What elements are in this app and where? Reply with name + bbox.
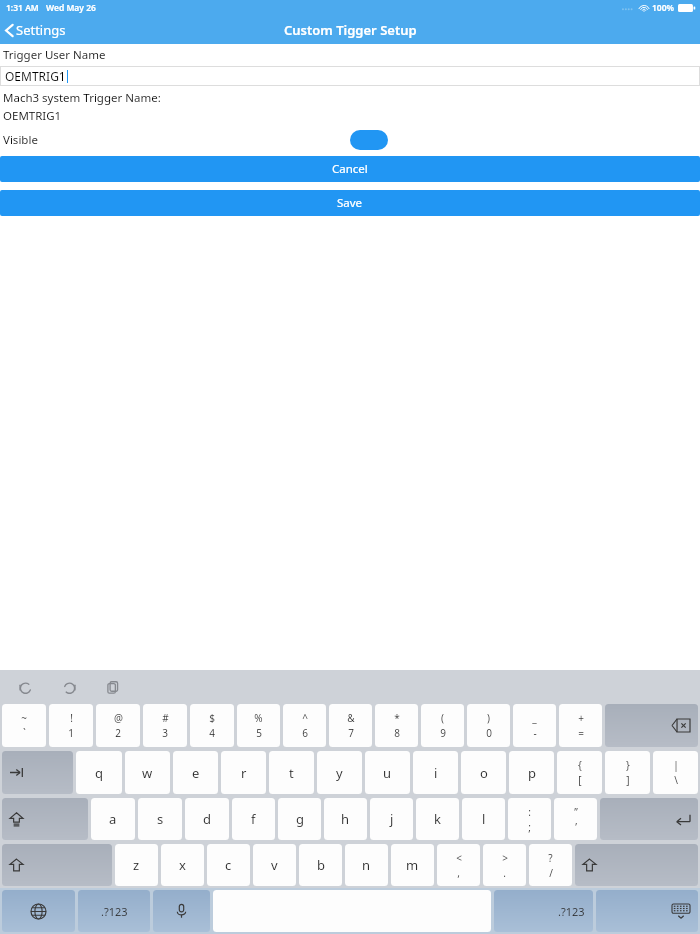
button[interactable]: k bbox=[416, 798, 459, 840]
button[interactable]: Language bbox=[2, 890, 75, 932]
button[interactable]: m bbox=[391, 844, 434, 886]
button[interactable]: z bbox=[115, 844, 158, 886]
staticText: Trigger User Name bbox=[3, 47, 106, 63]
button[interactable]: _ bbox=[513, 704, 556, 747]
staticText: s bbox=[157, 810, 164, 828]
button[interactable]: h bbox=[324, 798, 367, 840]
button[interactable]: g bbox=[278, 798, 321, 840]
button[interactable]: f bbox=[232, 798, 275, 840]
button[interactable]: return bbox=[600, 798, 698, 840]
button[interactable]: ! bbox=[49, 704, 93, 747]
button[interactable]: Save bbox=[0, 190, 700, 216]
button[interactable]: u bbox=[365, 751, 410, 794]
staticText: w bbox=[142, 764, 153, 782]
staticText: q bbox=[95, 764, 103, 782]
button[interactable]: : bbox=[508, 798, 551, 840]
staticText: Settings bbox=[16, 21, 66, 39]
staticText: .?123 bbox=[558, 904, 585, 919]
button[interactable]: Redo bbox=[58, 675, 80, 697]
staticText: x bbox=[179, 856, 186, 874]
staticText: j bbox=[390, 810, 394, 828]
button[interactable]: $ bbox=[190, 704, 234, 747]
staticText: @ bbox=[114, 711, 123, 725]
button[interactable]: OEMTRIG1 bbox=[0, 66, 700, 86]
button[interactable]: ^ bbox=[283, 704, 326, 747]
button[interactable]: c bbox=[207, 844, 250, 886]
button[interactable]: t bbox=[269, 751, 314, 794]
staticText: } bbox=[626, 758, 630, 772]
button[interactable]: x bbox=[161, 844, 204, 886]
button[interactable]: % bbox=[237, 704, 280, 747]
button[interactable]: q bbox=[76, 751, 122, 794]
staticText: b bbox=[317, 856, 325, 874]
staticText: # bbox=[162, 711, 169, 725]
staticText: Visible bbox=[3, 132, 38, 148]
staticText: h bbox=[341, 810, 350, 828]
button[interactable]: } bbox=[605, 751, 650, 794]
button[interactable]: ( bbox=[421, 704, 464, 747]
button[interactable]: Dictate bbox=[153, 890, 210, 932]
button[interactable]: .?123 bbox=[494, 890, 593, 932]
staticText: % bbox=[254, 711, 263, 725]
staticText: * bbox=[394, 711, 400, 725]
button[interactable]: r bbox=[221, 751, 266, 794]
button[interactable]: < bbox=[437, 844, 480, 886]
staticText: o bbox=[480, 764, 488, 782]
button[interactable]: n bbox=[345, 844, 388, 886]
button[interactable]: & bbox=[329, 704, 372, 747]
staticText: 7 bbox=[348, 726, 354, 740]
staticText: + bbox=[578, 711, 584, 725]
button[interactable]: | bbox=[653, 751, 698, 794]
button[interactable]: * bbox=[375, 704, 418, 747]
button[interactable]: Visible toggle bbox=[350, 130, 388, 150]
staticText: { bbox=[578, 758, 582, 772]
button[interactable]: ~ bbox=[2, 704, 46, 747]
button[interactable]: o bbox=[461, 751, 506, 794]
staticText: Save bbox=[337, 195, 363, 211]
button[interactable]: shift bbox=[575, 844, 698, 886]
button[interactable]: l bbox=[462, 798, 505, 840]
button[interactable]: Settings bbox=[5, 19, 72, 41]
staticText: v bbox=[271, 856, 278, 874]
button[interactable]: shift bbox=[2, 844, 112, 886]
button[interactable]: Undo bbox=[14, 675, 36, 697]
staticText: OEMTRIG1 bbox=[3, 108, 62, 124]
staticText: e bbox=[192, 764, 200, 782]
button[interactable]: ? bbox=[529, 844, 572, 886]
button[interactable]: p bbox=[509, 751, 554, 794]
staticText: 2 bbox=[115, 726, 121, 740]
button[interactable]: Paste bbox=[102, 675, 124, 697]
button[interactable]: @ bbox=[96, 704, 140, 747]
button[interactable]: backspace bbox=[605, 704, 698, 747]
button[interactable]: e bbox=[173, 751, 218, 794]
button[interactable]: s bbox=[138, 798, 182, 840]
button[interactable]: Hide keyboard bbox=[596, 890, 698, 932]
staticText: ^ bbox=[302, 711, 308, 725]
button[interactable]: + bbox=[559, 704, 602, 747]
staticText: Mach3 system Trigger Name: bbox=[3, 90, 161, 106]
button[interactable]: { bbox=[557, 751, 602, 794]
staticText: Wed May 26 bbox=[46, 2, 96, 14]
button[interactable]: b bbox=[299, 844, 342, 886]
button[interactable]: ” bbox=[554, 798, 597, 840]
button[interactable]: caps bbox=[2, 798, 88, 840]
button[interactable]: v bbox=[253, 844, 296, 886]
button[interactable]: .?123 bbox=[78, 890, 150, 932]
button[interactable]: Cancel bbox=[0, 156, 700, 182]
button[interactable]: > bbox=[483, 844, 526, 886]
button[interactable]: tab bbox=[2, 751, 73, 794]
staticText: $ bbox=[209, 711, 215, 725]
button[interactable]: w bbox=[125, 751, 170, 794]
staticText: 100% bbox=[652, 2, 675, 14]
staticText: < bbox=[456, 851, 462, 865]
button[interactable]: j bbox=[370, 798, 413, 840]
button[interactable]: y bbox=[317, 751, 362, 794]
button[interactable]: a bbox=[91, 798, 135, 840]
button[interactable]: # bbox=[143, 704, 187, 747]
staticText: .?123 bbox=[101, 904, 128, 919]
staticText: p bbox=[528, 764, 536, 782]
button[interactable]: d bbox=[185, 798, 229, 840]
button[interactable]: i bbox=[413, 751, 458, 794]
button[interactable]: ) bbox=[467, 704, 510, 747]
